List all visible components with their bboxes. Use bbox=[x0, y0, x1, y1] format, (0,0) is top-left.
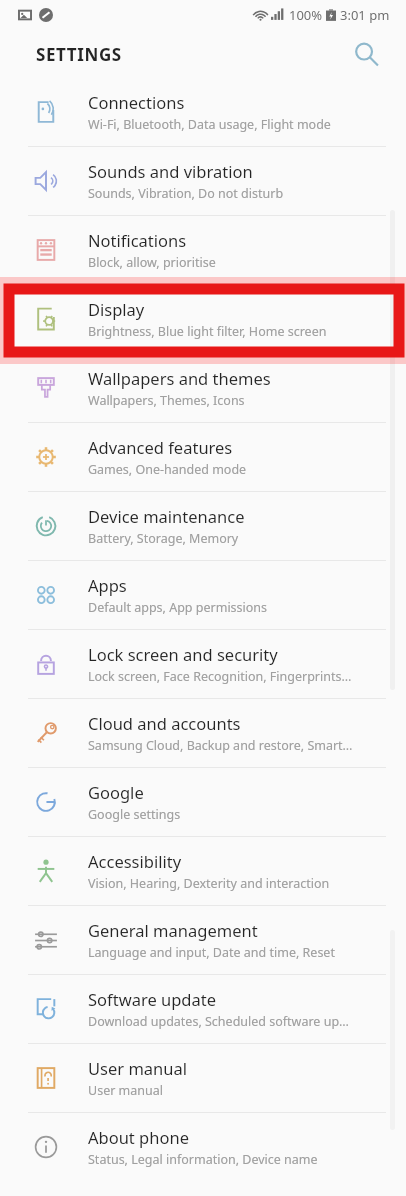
staticText: Lock screen and security bbox=[88, 643, 278, 665]
button[interactable]: Wallpapers and themes bbox=[0, 354, 406, 422]
button[interactable]: Accessibility bbox=[0, 837, 406, 905]
staticText: Language and input, Date and time, Reset bbox=[88, 944, 335, 961]
staticText: Accessibility bbox=[88, 850, 182, 872]
staticText: Advanced features bbox=[88, 436, 233, 458]
button[interactable]: Notifications bbox=[0, 216, 406, 284]
staticText: User manual bbox=[88, 1057, 187, 1079]
button[interactable]: Lock screen and security bbox=[0, 630, 406, 698]
button[interactable]: Software update bbox=[0, 975, 406, 1043]
staticText: Display bbox=[88, 298, 145, 320]
button[interactable]: User manual bbox=[0, 1044, 406, 1112]
button[interactable]: Apps bbox=[0, 561, 406, 629]
staticText: 100% bbox=[289, 6, 323, 24]
staticText: Games, One-handed mode bbox=[88, 461, 247, 478]
staticText: Wi-Fi, Bluetooth, Data usage, Flight mod… bbox=[88, 116, 331, 133]
staticText: Software update bbox=[88, 988, 216, 1010]
staticText: Device maintenance bbox=[88, 505, 245, 527]
button[interactable]: General management bbox=[0, 906, 406, 974]
staticText: Lock screen, Face Recognition, Fingerpri… bbox=[88, 668, 352, 685]
staticText: Notifications bbox=[88, 229, 187, 251]
staticText: User manual bbox=[88, 1082, 163, 1099]
staticText: Battery, Storage, Memory bbox=[88, 530, 239, 547]
button[interactable]: Display bbox=[0, 285, 406, 353]
staticText: Apps bbox=[88, 574, 127, 596]
staticText: Brightness, Blue light filter, Home scre… bbox=[88, 323, 327, 340]
staticText: Wallpapers, Themes, Icons bbox=[88, 392, 245, 409]
staticText: Sounds, Vibration, Do not disturb bbox=[88, 185, 284, 202]
staticText: General management bbox=[88, 919, 258, 941]
button[interactable]: Connections bbox=[0, 78, 406, 146]
button[interactable]: About phone bbox=[0, 1113, 406, 1181]
button[interactable]: Advanced features bbox=[0, 423, 406, 491]
staticText: Sounds and vibration bbox=[88, 160, 253, 182]
staticText: About phone bbox=[88, 1126, 189, 1148]
staticText: Block, allow, prioritise bbox=[88, 254, 216, 271]
staticText: Wallpapers and themes bbox=[88, 367, 271, 389]
button[interactable]: Cloud and accounts bbox=[0, 699, 406, 767]
staticText: Default apps, App permissions bbox=[88, 599, 268, 616]
button[interactable]: Google bbox=[0, 768, 406, 836]
staticText: Cloud and accounts bbox=[88, 712, 241, 734]
staticText: SETTINGS bbox=[36, 43, 122, 66]
staticText: Connections bbox=[88, 91, 185, 113]
staticText: Vision, Hearing, Dexterity and interacti… bbox=[88, 875, 330, 892]
staticText: Google bbox=[88, 781, 144, 803]
staticText: Google settings bbox=[88, 806, 181, 823]
staticText: 3:01 pm bbox=[340, 6, 390, 24]
button[interactable]: Sounds and vibration bbox=[0, 147, 406, 215]
staticText: Download updates, Scheduled software up… bbox=[88, 1013, 349, 1030]
staticText: Samsung Cloud, Backup and restore, Smart… bbox=[88, 737, 353, 754]
button[interactable]: Device maintenance bbox=[0, 492, 406, 560]
button[interactable]: Search bbox=[348, 36, 384, 72]
staticText: Status, Legal information, Device name bbox=[88, 1151, 318, 1168]
